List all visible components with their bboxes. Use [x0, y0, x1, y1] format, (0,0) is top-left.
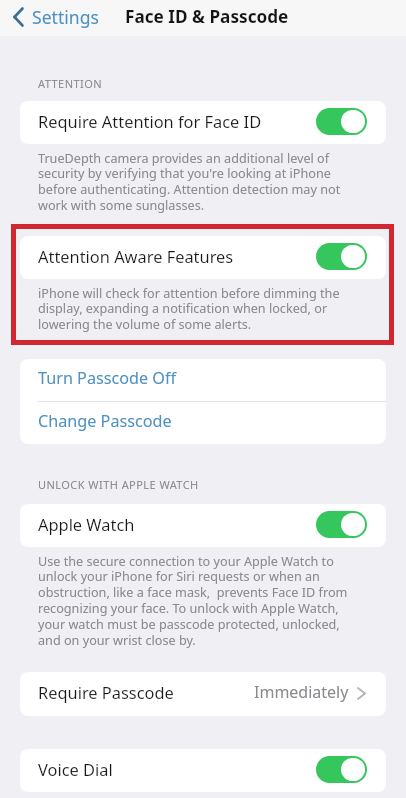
button[interactable]: Require Passcode: [20, 672, 386, 716]
button[interactable]: Apple Watch: [20, 504, 386, 547]
staticText: Settings: [32, 5, 99, 29]
staticText: Face ID & Passcode: [125, 5, 289, 28]
button[interactable]: Toggle switch, on: [316, 108, 367, 135]
staticText: Voice Dial: [38, 758, 113, 780]
button[interactable]: Attention Aware Features: [20, 236, 386, 279]
staticText: Use the secure connection to your Apple …: [38, 552, 348, 649]
button[interactable]: Change Passcode: [20, 402, 386, 444]
button[interactable]: Voice Dial: [20, 749, 386, 792]
staticText: Attention Aware Features: [38, 245, 234, 267]
staticText: TrueDepth camera provides an additional …: [38, 149, 341, 214]
button[interactable]: Toggle switch, on: [316, 756, 367, 783]
staticText: iPhone will check for attention before d…: [38, 284, 340, 333]
staticText: ATTENTION: [38, 76, 103, 91]
staticText: UNLOCK WITH APPLE WATCH: [38, 477, 199, 492]
staticText: Apple Watch: [38, 513, 135, 535]
button[interactable]: Toggle switch, on: [316, 243, 367, 270]
staticText: Immediately: [254, 681, 349, 703]
staticText: Turn Passcode Off: [38, 367, 177, 389]
staticText: Require Passcode: [38, 681, 174, 703]
button[interactable]: Require Attention for Face ID: [20, 101, 386, 144]
button[interactable]: Turn Passcode Off: [20, 359, 386, 401]
staticText: Change Passcode: [38, 410, 172, 432]
button[interactable]: Settings: [0, 3, 107, 33]
button[interactable]: Toggle switch, on: [316, 511, 367, 538]
staticText: Require Attention for Face ID: [38, 110, 262, 132]
